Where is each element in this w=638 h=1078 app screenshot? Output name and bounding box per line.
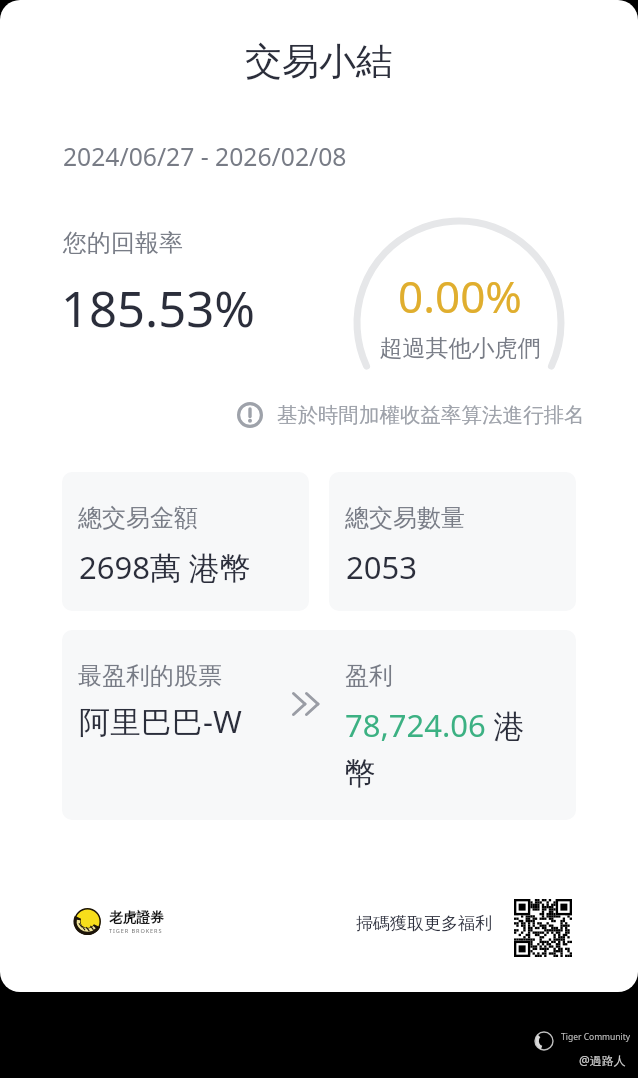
staticText: @過路人 [579, 1052, 626, 1068]
staticText: 0.00% [354, 266, 566, 326]
staticText: Tiger Community [561, 1031, 631, 1043]
staticText: 阿里巴巴-W [79, 700, 242, 742]
button[interactable]: 老虎證券 [74, 908, 164, 935]
staticText: 超過其他小虎們 [354, 334, 566, 363]
staticText: 盈利 [345, 661, 393, 691]
staticText: 2698萬 港幣 [79, 546, 251, 588]
staticText: 185.53% [61, 275, 255, 342]
button[interactable]: Info [237, 402, 585, 428]
button[interactable]: 總交易數量 [329, 472, 576, 611]
staticText: 您的回報率 [63, 228, 183, 258]
button[interactable]: 總交易金額 [62, 472, 309, 611]
other: Tiger Community [534, 1031, 554, 1051]
button[interactable]: 最盈利的股票 [62, 630, 576, 820]
staticText: 最盈利的股票 [78, 661, 222, 691]
staticText: 掃碼獲取更多福利 [356, 913, 492, 934]
staticText: 2024/06/27 - 2026/02/08 [63, 140, 347, 174]
staticText: 2053 [346, 546, 417, 588]
staticText: 78,724.06 港幣 [345, 704, 535, 793]
staticText: 老虎證券 [109, 909, 164, 926]
staticText: 交易小結 [0, 38, 638, 85]
button[interactable]: QR code [514, 899, 572, 957]
staticText: 總交易數量 [345, 503, 465, 533]
staticText: 基於時間加權收益率算法進行排名 [277, 402, 585, 428]
button[interactable]: Tiger Community [534, 1031, 631, 1068]
other: Info [237, 402, 263, 428]
staticText: 總交易金額 [78, 503, 198, 533]
staticText: TIGER BROKERS [109, 927, 163, 935]
